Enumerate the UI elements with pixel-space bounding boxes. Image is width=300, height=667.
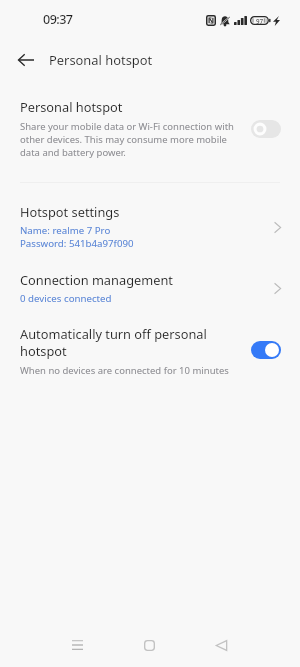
button[interactable]: Home	[129, 625, 169, 665]
staticText: Name: realme 7 Pro	[20, 224, 111, 237]
button[interactable]: Personal hotspot	[0, 99, 300, 159]
staticText: Personal hotspot	[49, 51, 153, 69]
button[interactable]: Automatically turn off personal hotspot	[0, 326, 300, 377]
staticText: Personal hotspot	[20, 99, 123, 116]
staticText: 09:37	[43, 11, 73, 28]
button[interactable]: Turn on	[251, 120, 281, 138]
staticText: Share your mobile data or Wi-Fi connecti…	[20, 120, 247, 159]
button[interactable]: Recents	[57, 625, 97, 665]
button[interactable]: Connection management	[0, 272, 300, 305]
staticText: When no devices are connected for 10 min…	[20, 364, 229, 377]
staticText: Connection management	[20, 272, 173, 289]
button[interactable]: Hotspot settings	[0, 204, 300, 250]
staticText: 0 devices connected	[20, 292, 112, 305]
button[interactable]: Turn off	[251, 341, 281, 359]
button[interactable]: Back	[201, 625, 241, 665]
button[interactable]: Back	[9, 43, 43, 77]
staticText: Automatically turn off personal hotspot	[20, 326, 237, 360]
staticText: Hotspot settings	[20, 204, 120, 221]
staticText: 97	[256, 17, 264, 25]
staticText: Password: 541b4a97f090	[20, 237, 134, 250]
